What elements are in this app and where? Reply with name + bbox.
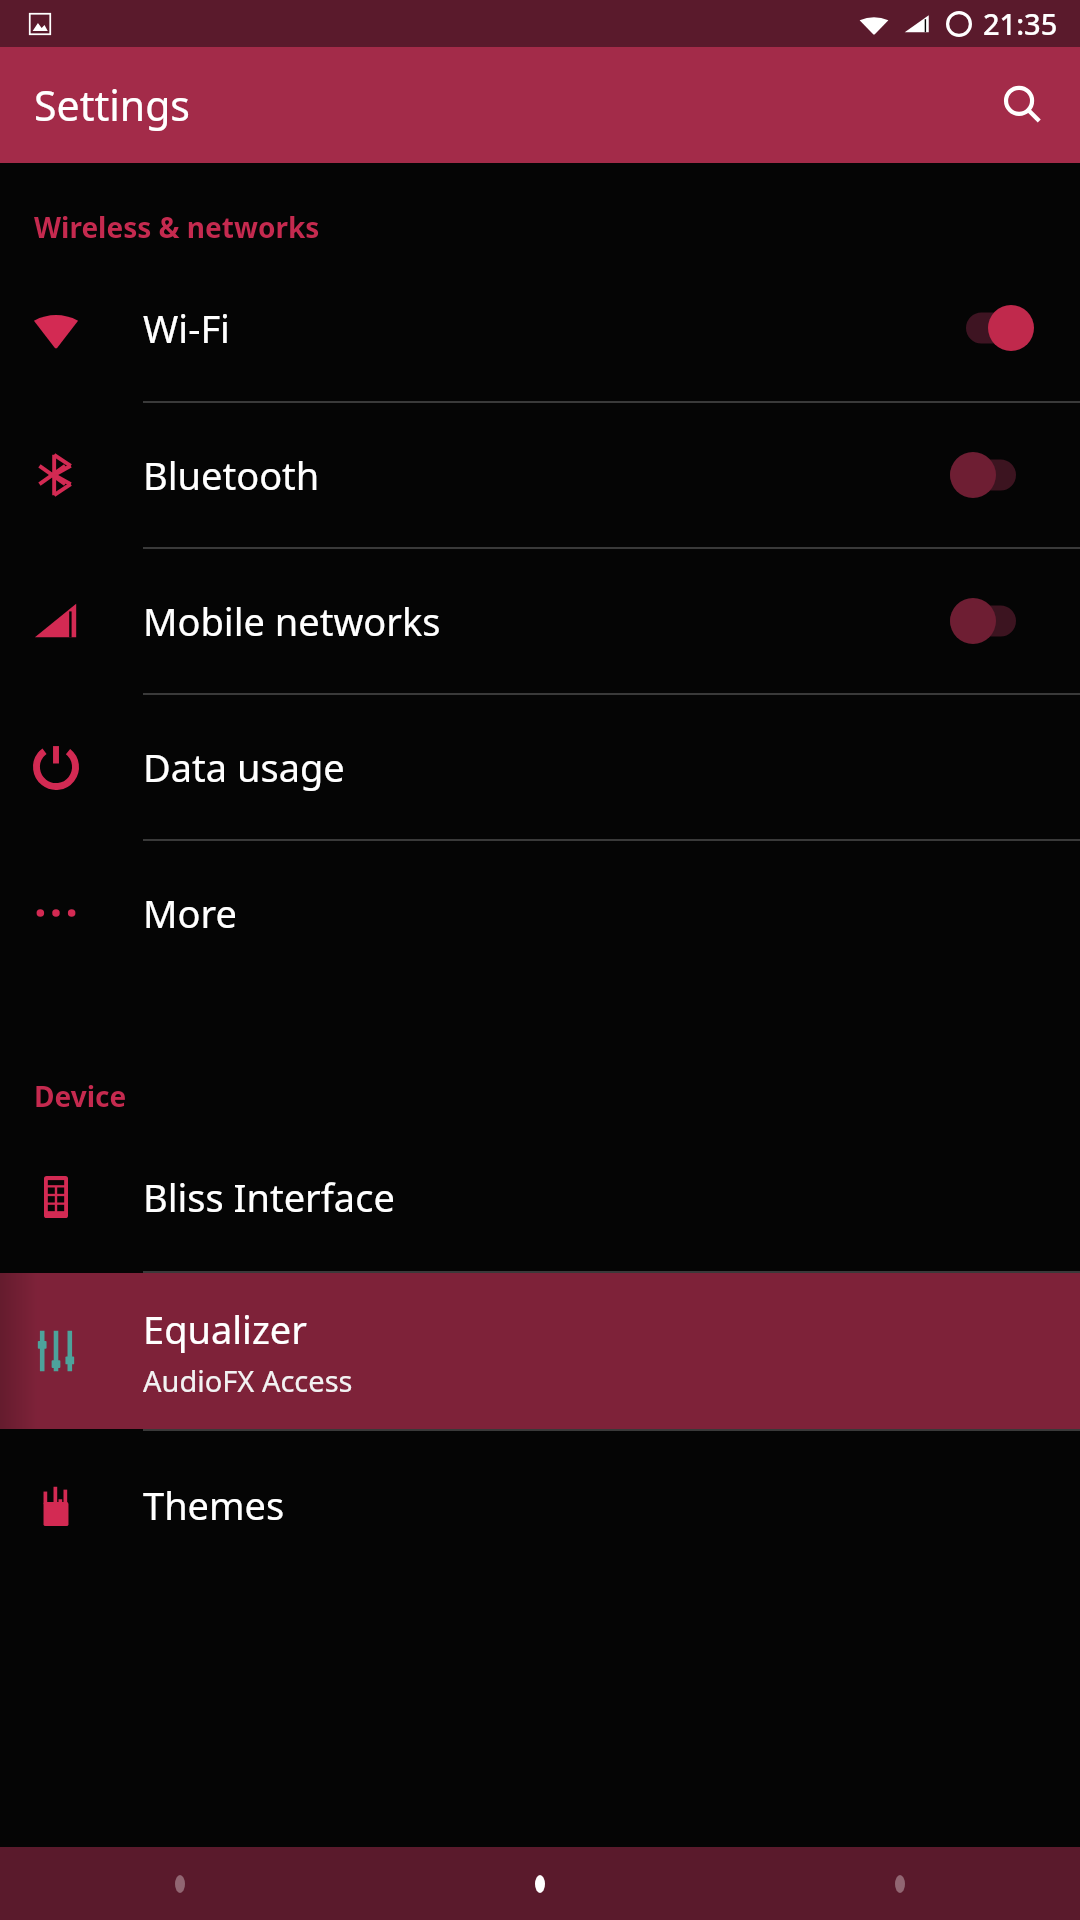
button[interactable]: More — [0, 841, 1080, 985]
staticText: Device — [34, 1077, 127, 1115]
button[interactable]: Equalizer — [0, 1273, 1080, 1429]
button[interactable]: Search — [986, 69, 1058, 141]
button[interactable]: Recents — [720, 1847, 1080, 1920]
button[interactable]: Back — [0, 1847, 360, 1920]
button[interactable]: Off — [944, 591, 1040, 651]
staticText: Themes — [143, 1479, 285, 1531]
button[interactable]: Themes — [0, 1431, 1080, 1579]
staticText: Mobile networks — [143, 595, 441, 647]
staticText: 21:35 — [983, 4, 1058, 43]
button[interactable]: Off — [944, 445, 1040, 505]
button[interactable]: Data usage — [0, 695, 1080, 839]
staticText: Wireless & networks — [34, 208, 320, 246]
button[interactable]: Home — [360, 1847, 720, 1920]
staticText: Equalizer — [143, 1303, 307, 1355]
staticText: More — [143, 887, 237, 939]
button[interactable]: Bliss Interface — [0, 1123, 1080, 1271]
staticText: AudioFX Access — [143, 1361, 353, 1400]
button[interactable]: Wi-Fi — [0, 254, 1080, 401]
button[interactable]: Mobile networks — [0, 549, 1080, 693]
staticText: Wi-Fi — [143, 302, 230, 354]
staticText: Data usage — [143, 741, 345, 793]
staticText: Settings — [34, 77, 191, 133]
button[interactable]: On — [944, 298, 1040, 358]
staticText: Bliss Interface — [143, 1171, 395, 1223]
staticText: Bluetooth — [143, 449, 320, 501]
button[interactable]: Bluetooth — [0, 403, 1080, 547]
